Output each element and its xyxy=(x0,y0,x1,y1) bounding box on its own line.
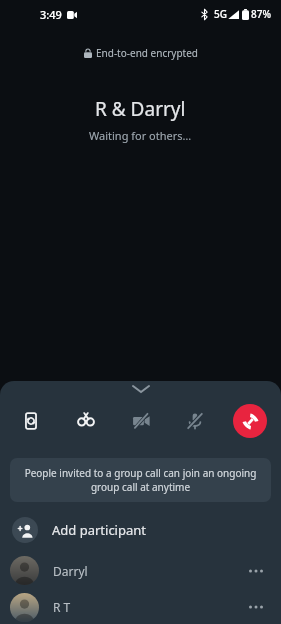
button[interactable]: Darryl xyxy=(0,551,281,590)
staticText: Add participant xyxy=(52,521,146,539)
button[interactable]: Collapse xyxy=(0,381,281,397)
staticText: 5G xyxy=(214,7,227,21)
button[interactable]: End call xyxy=(233,404,267,438)
button[interactable]: Turn on camera xyxy=(124,404,158,438)
staticText: End-to-end encrypted xyxy=(96,46,198,60)
button[interactable]: R T xyxy=(0,590,281,624)
staticText: Darryl xyxy=(53,563,88,579)
staticText: R & Darryl xyxy=(95,96,186,122)
staticText: People invited to a group call can join … xyxy=(22,466,259,494)
button[interactable]: Add participant xyxy=(0,511,281,549)
staticText: 3:49 xyxy=(40,7,62,22)
button[interactable]: More options for Darryl xyxy=(243,558,269,584)
button[interactable]: Effects xyxy=(69,404,103,438)
staticText: R T xyxy=(53,599,71,615)
button[interactable]: Flip camera xyxy=(14,404,48,438)
button[interactable]: Unmute xyxy=(178,404,212,438)
button[interactable]: More options for R T xyxy=(243,594,269,620)
staticText: 87% xyxy=(251,7,271,21)
staticText: Waiting for others… xyxy=(89,128,192,143)
